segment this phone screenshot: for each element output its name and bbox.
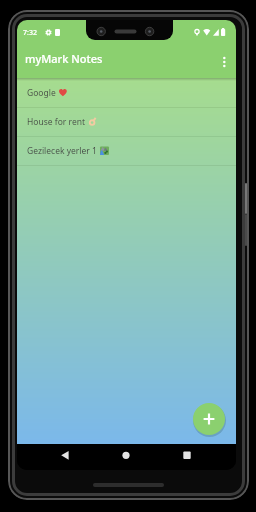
button[interactable] <box>55 445 75 465</box>
button[interactable]: House for rent <box>17 107 236 136</box>
staticText: myMark Notes <box>25 51 103 66</box>
button[interactable] <box>193 403 225 435</box>
button[interactable] <box>177 445 197 465</box>
staticText: Google <box>27 87 56 99</box>
button[interactable]: Gezilecek yerler 1 <box>17 136 236 165</box>
staticText: House for rent <box>27 116 86 128</box>
staticText: Gezilecek yerler 1 <box>27 145 97 157</box>
staticText: 7:32 <box>23 28 37 38</box>
button[interactable] <box>216 53 233 73</box>
button[interactable]: Google <box>17 78 236 107</box>
button[interactable] <box>116 445 136 465</box>
